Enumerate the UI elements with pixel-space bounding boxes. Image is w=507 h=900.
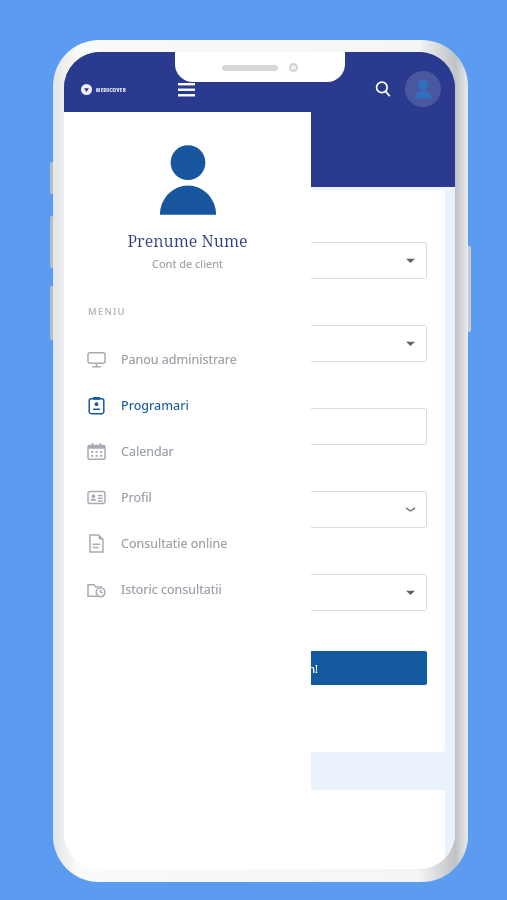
button[interactable]: Istoric consultatii [64,566,311,612]
staticText: MENIU [88,305,126,318]
button[interactable] [92,491,427,528]
staticText: Programeaza-te acum! [201,661,318,676]
staticText: Calendar [121,443,174,460]
button[interactable]: Profil [64,474,311,520]
button[interactable]: MEDICOVER [81,78,127,101]
button[interactable]: Menu [169,72,203,106]
button[interactable]: Search [366,72,400,106]
button[interactable]: Panou administrare [64,336,311,382]
staticText: Consultatie online [121,535,228,552]
staticText: Panou administrare [121,351,237,368]
button[interactable] [92,242,427,279]
staticText: Istoric consultatii [121,581,222,598]
button[interactable]: Programari [64,382,311,428]
staticText: MEDICOVER [96,87,127,93]
button[interactable]: Calendar [64,428,311,474]
button[interactable] [92,408,427,445]
button[interactable] [92,574,427,611]
button[interactable]: Account [405,71,441,107]
button[interactable]: Consultatie online [64,520,311,566]
staticText: Profil [121,489,152,506]
staticText: Prenume Nume [64,230,311,252]
staticText: Programari [121,397,189,414]
button[interactable]: Programeaza-te acum! [92,651,427,685]
button[interactable] [92,325,427,362]
staticText: Cont de client [64,256,311,271]
